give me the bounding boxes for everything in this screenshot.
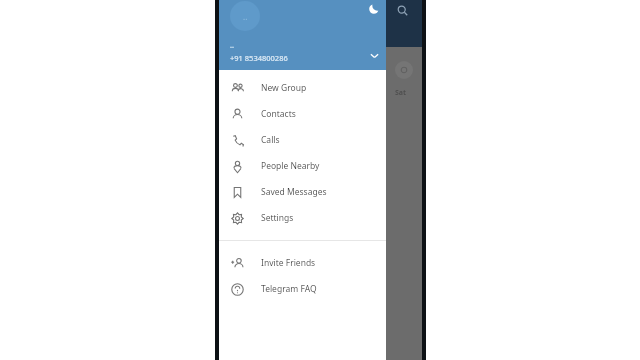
button[interactable]: Calls	[219, 127, 386, 153]
staticText: People Nearby	[261, 160, 320, 172]
button[interactable]: Settings	[219, 205, 386, 231]
button[interactable]: Contacts	[219, 101, 386, 127]
button[interactable]: New message	[395, 61, 413, 79]
staticText: ..	[230, 41, 234, 51]
staticText: Telegram FAQ	[261, 283, 317, 295]
button[interactable]: Night mode	[365, 0, 383, 18]
staticText: Invite Friends	[261, 257, 316, 269]
staticText: +91 8534800286	[230, 53, 288, 63]
button[interactable]: Telegram FAQ	[219, 276, 386, 302]
staticText: Sat	[395, 88, 407, 98]
button[interactable]: People Nearby	[219, 153, 386, 179]
button[interactable]: New Group	[219, 75, 386, 101]
staticText: Contacts	[261, 108, 296, 120]
button[interactable]: Saved Messages	[219, 179, 386, 205]
staticText: New Group	[261, 82, 307, 94]
button[interactable]: Invite Friends	[219, 250, 386, 276]
button[interactable]: Expand accounts	[365, 46, 383, 64]
staticText: Saved Messages	[261, 186, 327, 198]
staticText: Settings	[261, 212, 294, 224]
staticText: ..	[243, 11, 248, 22]
staticText: Calls	[261, 134, 280, 146]
button[interactable]: Profile photo	[230, 1, 260, 31]
button[interactable]: Search	[393, 1, 411, 19]
